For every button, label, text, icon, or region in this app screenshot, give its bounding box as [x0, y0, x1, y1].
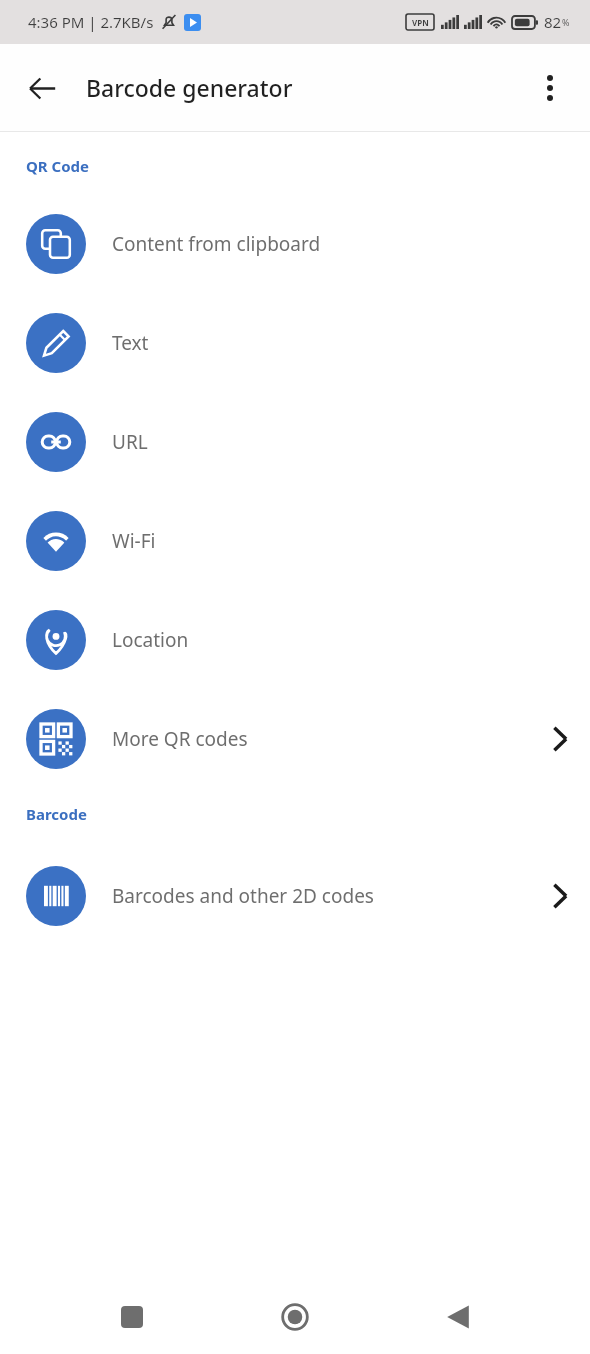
button[interactable]: Text	[0, 293, 590, 392]
button[interactable]: URL	[0, 392, 590, 491]
staticText: 4:36 PM | 2.7KB/s	[28, 12, 154, 32]
button[interactable]: Recent apps	[101, 1286, 163, 1348]
staticText: QR Code	[26, 156, 90, 176]
staticText: Barcodes and other 2D codes	[112, 883, 374, 909]
staticText: 82	[544, 12, 562, 32]
staticText: Wi-Fi	[112, 528, 156, 554]
staticText: Content from clipboard	[112, 231, 321, 257]
button[interactable]: Home	[264, 1286, 326, 1348]
button[interactable]: Location	[0, 590, 590, 689]
staticText: Barcode generator	[86, 72, 293, 103]
staticText: %	[562, 16, 570, 28]
staticText: Location	[112, 627, 189, 653]
button[interactable]: Wi-Fi	[0, 491, 590, 590]
staticText: Barcode	[26, 804, 87, 824]
staticText: More QR codes	[112, 726, 248, 752]
button[interactable]: More QR codes	[0, 689, 590, 788]
staticText: URL	[112, 429, 148, 455]
staticText: VPN	[412, 17, 429, 28]
button[interactable]: Content from clipboard	[0, 194, 590, 293]
button[interactable]: Back	[14, 60, 70, 116]
staticText: Text	[112, 330, 149, 356]
button[interactable]: More options	[524, 62, 576, 114]
button[interactable]: Back	[427, 1286, 489, 1348]
button[interactable]: Barcodes and other 2D codes	[0, 846, 590, 945]
